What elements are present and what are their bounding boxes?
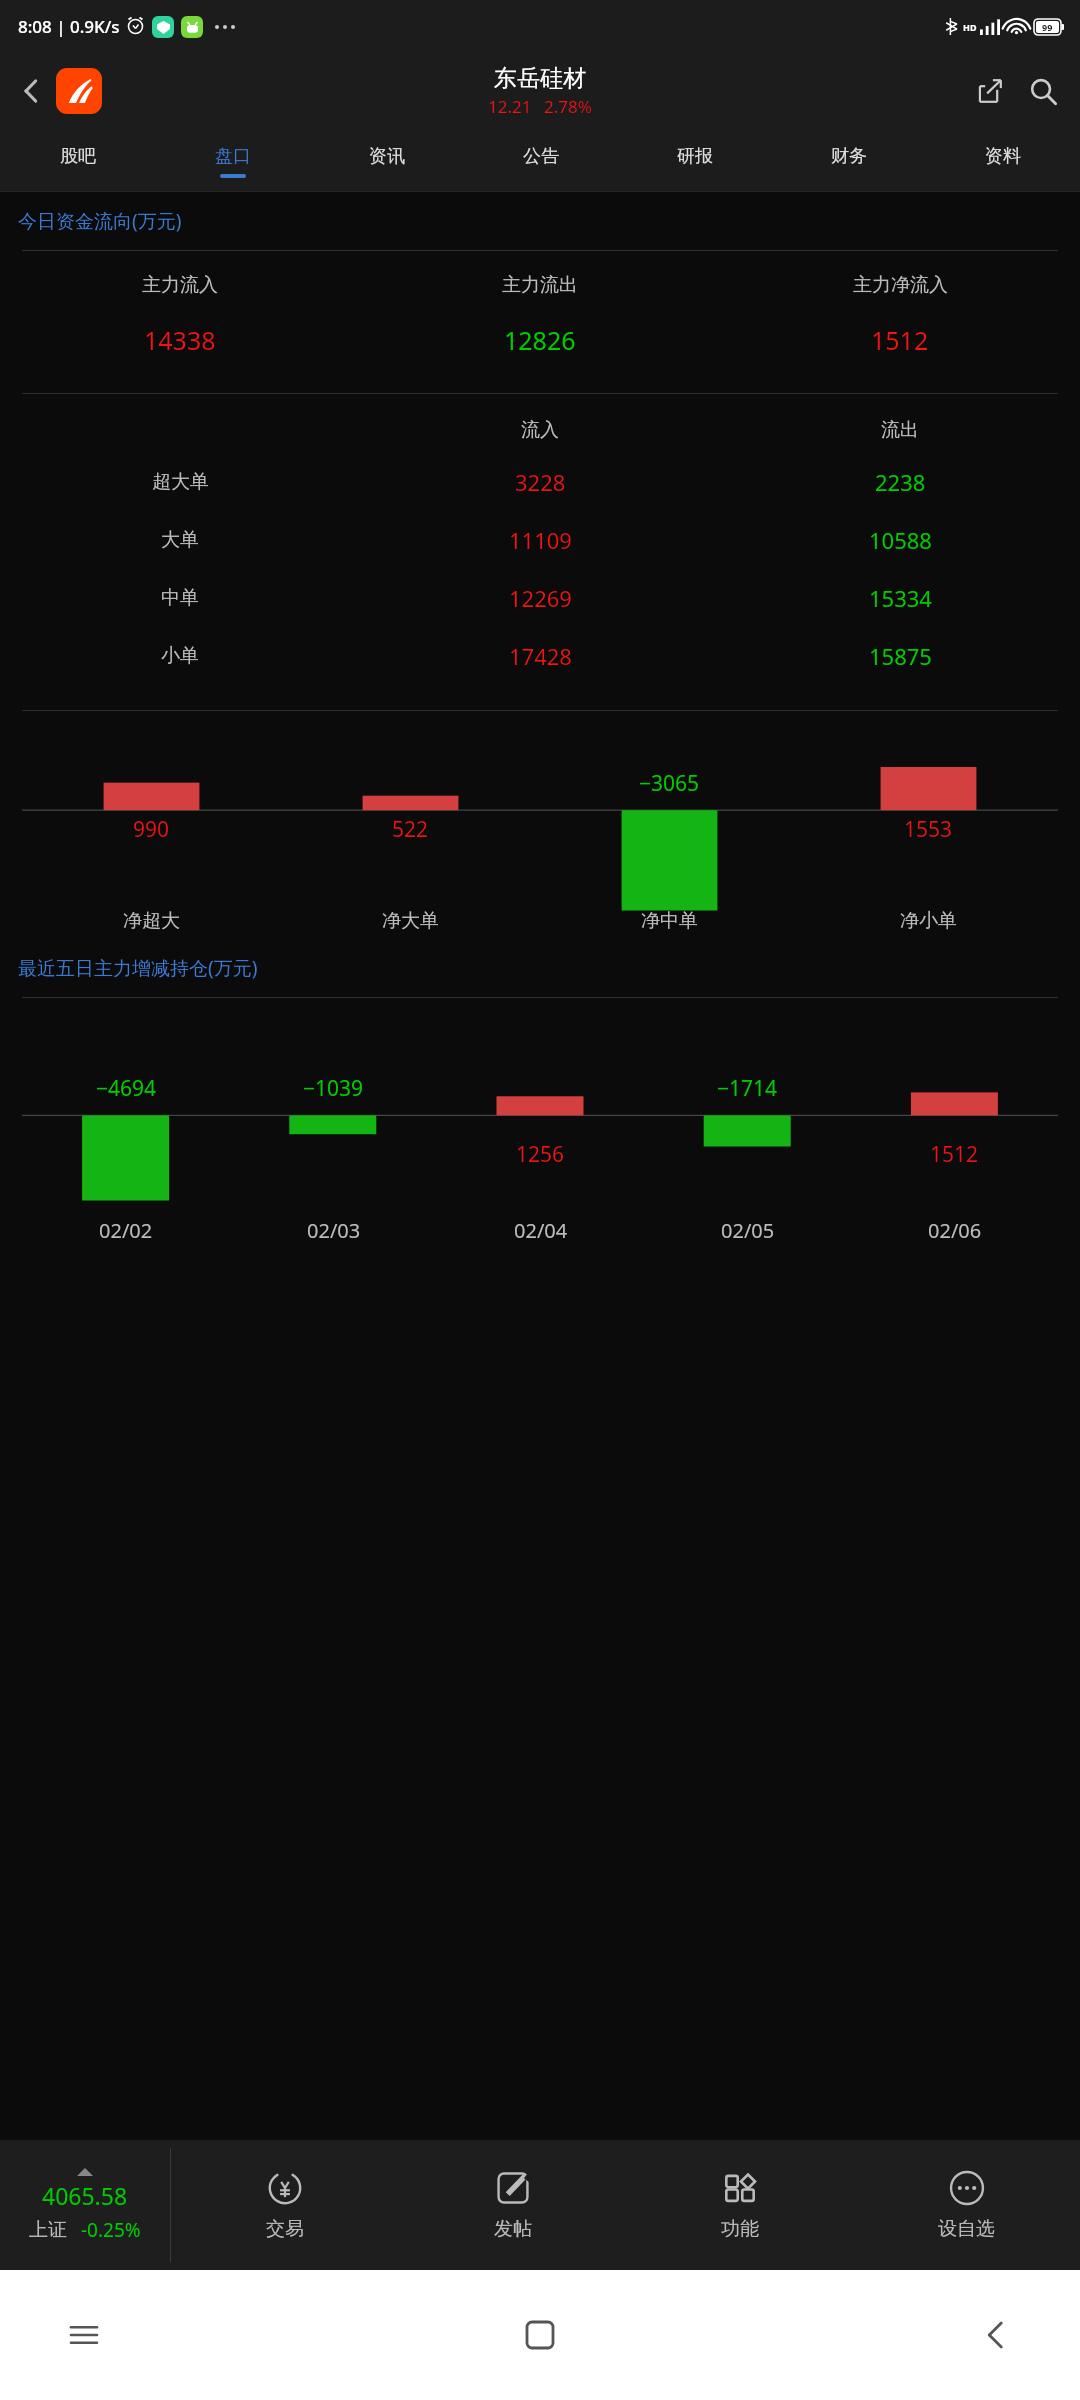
staticText: 02/04 bbox=[514, 1217, 568, 1244]
staticText: 主力净流入 bbox=[853, 273, 948, 297]
button[interactable]: Recents bbox=[56, 2307, 112, 2363]
button[interactable]: 设自选 bbox=[853, 2140, 1080, 2270]
button[interactable]: 股吧 bbox=[0, 130, 155, 192]
staticText: 小单 bbox=[161, 644, 199, 668]
staticText: 研报 bbox=[677, 145, 713, 168]
staticText: 超大单 bbox=[152, 470, 209, 494]
staticText: 交易 bbox=[266, 2217, 304, 2241]
button[interactable]: 财务 bbox=[772, 130, 926, 192]
button[interactable]: 盘口 bbox=[155, 130, 310, 192]
staticText: 公告 bbox=[523, 145, 559, 168]
staticText: 主力流出 bbox=[502, 273, 578, 297]
staticText: 上证 bbox=[29, 2218, 67, 2242]
staticText: 02/02 bbox=[99, 1217, 153, 1244]
staticText: 最近五日主力增减持仓(万元) bbox=[18, 955, 258, 981]
staticText: 1512 bbox=[930, 1140, 979, 1169]
staticText: 盘口 bbox=[215, 145, 251, 168]
button[interactable]: 4065.58 bbox=[0, 2140, 170, 2270]
staticText: 15875 bbox=[869, 641, 932, 671]
staticText: 资料 bbox=[985, 145, 1021, 168]
staticText: 净超大 bbox=[123, 909, 180, 933]
staticText: 1256 bbox=[516, 1140, 565, 1169]
button[interactable]: Search bbox=[1020, 68, 1066, 114]
staticText: 主力流入 bbox=[142, 273, 218, 297]
staticText: -0.25% bbox=[81, 2217, 141, 2243]
staticText: −3065 bbox=[639, 769, 700, 798]
staticText: 净中单 bbox=[641, 909, 698, 933]
staticText: 12269 bbox=[509, 583, 572, 613]
staticText: 2238 bbox=[875, 467, 926, 497]
button[interactable]: App logo bbox=[56, 68, 102, 114]
button[interactable]: Share bbox=[968, 69, 1012, 113]
button[interactable]: Back bbox=[10, 69, 54, 113]
staticText: 净大单 bbox=[382, 909, 439, 933]
staticText: 522 bbox=[392, 815, 429, 844]
staticText: 02/05 bbox=[721, 1217, 775, 1244]
staticText: 中单 bbox=[161, 586, 199, 610]
staticText: −1039 bbox=[303, 1074, 364, 1103]
staticText: 3228 bbox=[515, 467, 566, 497]
staticText: 净小单 bbox=[900, 909, 957, 933]
button[interactable]: 交易 bbox=[171, 2140, 399, 2270]
staticText: −4694 bbox=[96, 1074, 157, 1103]
staticText: 10588 bbox=[869, 525, 932, 555]
staticText: 1553 bbox=[904, 815, 953, 844]
staticText: 15334 bbox=[869, 583, 932, 613]
staticText: 2.78% bbox=[544, 95, 592, 118]
button[interactable]: 资讯 bbox=[310, 130, 464, 192]
staticText: 02/03 bbox=[307, 1217, 361, 1244]
staticText: 设自选 bbox=[938, 2217, 995, 2241]
staticText: 流入 bbox=[521, 418, 559, 442]
button[interactable]: 发帖 bbox=[399, 2140, 626, 2270]
staticText: 大单 bbox=[161, 528, 199, 552]
staticText: HD bbox=[963, 21, 977, 33]
staticText: 4065.58 bbox=[42, 2180, 128, 2211]
staticText: 发帖 bbox=[494, 2217, 532, 2241]
staticText: −1714 bbox=[717, 1074, 778, 1103]
staticText: 股吧 bbox=[60, 145, 96, 168]
staticText: 12.21 bbox=[488, 95, 532, 118]
staticText: 99 bbox=[1042, 21, 1053, 33]
staticText: 1512 bbox=[871, 323, 929, 357]
staticText: 资讯 bbox=[369, 145, 405, 168]
staticText: 12826 bbox=[504, 323, 576, 357]
button[interactable]: Back bbox=[968, 2307, 1024, 2363]
staticText: 东岳硅材 bbox=[494, 64, 586, 93]
staticText: 8:08 | 0.9K/s bbox=[18, 15, 120, 38]
button[interactable]: 资料 bbox=[926, 130, 1080, 192]
staticText: 今日资金流向(万元) bbox=[18, 208, 182, 234]
staticText: 11109 bbox=[509, 525, 572, 555]
staticText: 990 bbox=[133, 815, 170, 844]
staticText: 14338 bbox=[144, 323, 216, 357]
button[interactable]: Home bbox=[512, 2307, 568, 2363]
staticText: 流出 bbox=[881, 418, 919, 442]
button[interactable]: 研报 bbox=[618, 130, 772, 192]
staticText: 02/06 bbox=[928, 1217, 982, 1244]
staticText: 17428 bbox=[509, 641, 572, 671]
button[interactable]: 公告 bbox=[464, 130, 618, 192]
staticText: 功能 bbox=[721, 2217, 759, 2241]
button[interactable]: 功能 bbox=[626, 2140, 853, 2270]
staticText: 财务 bbox=[831, 145, 867, 168]
